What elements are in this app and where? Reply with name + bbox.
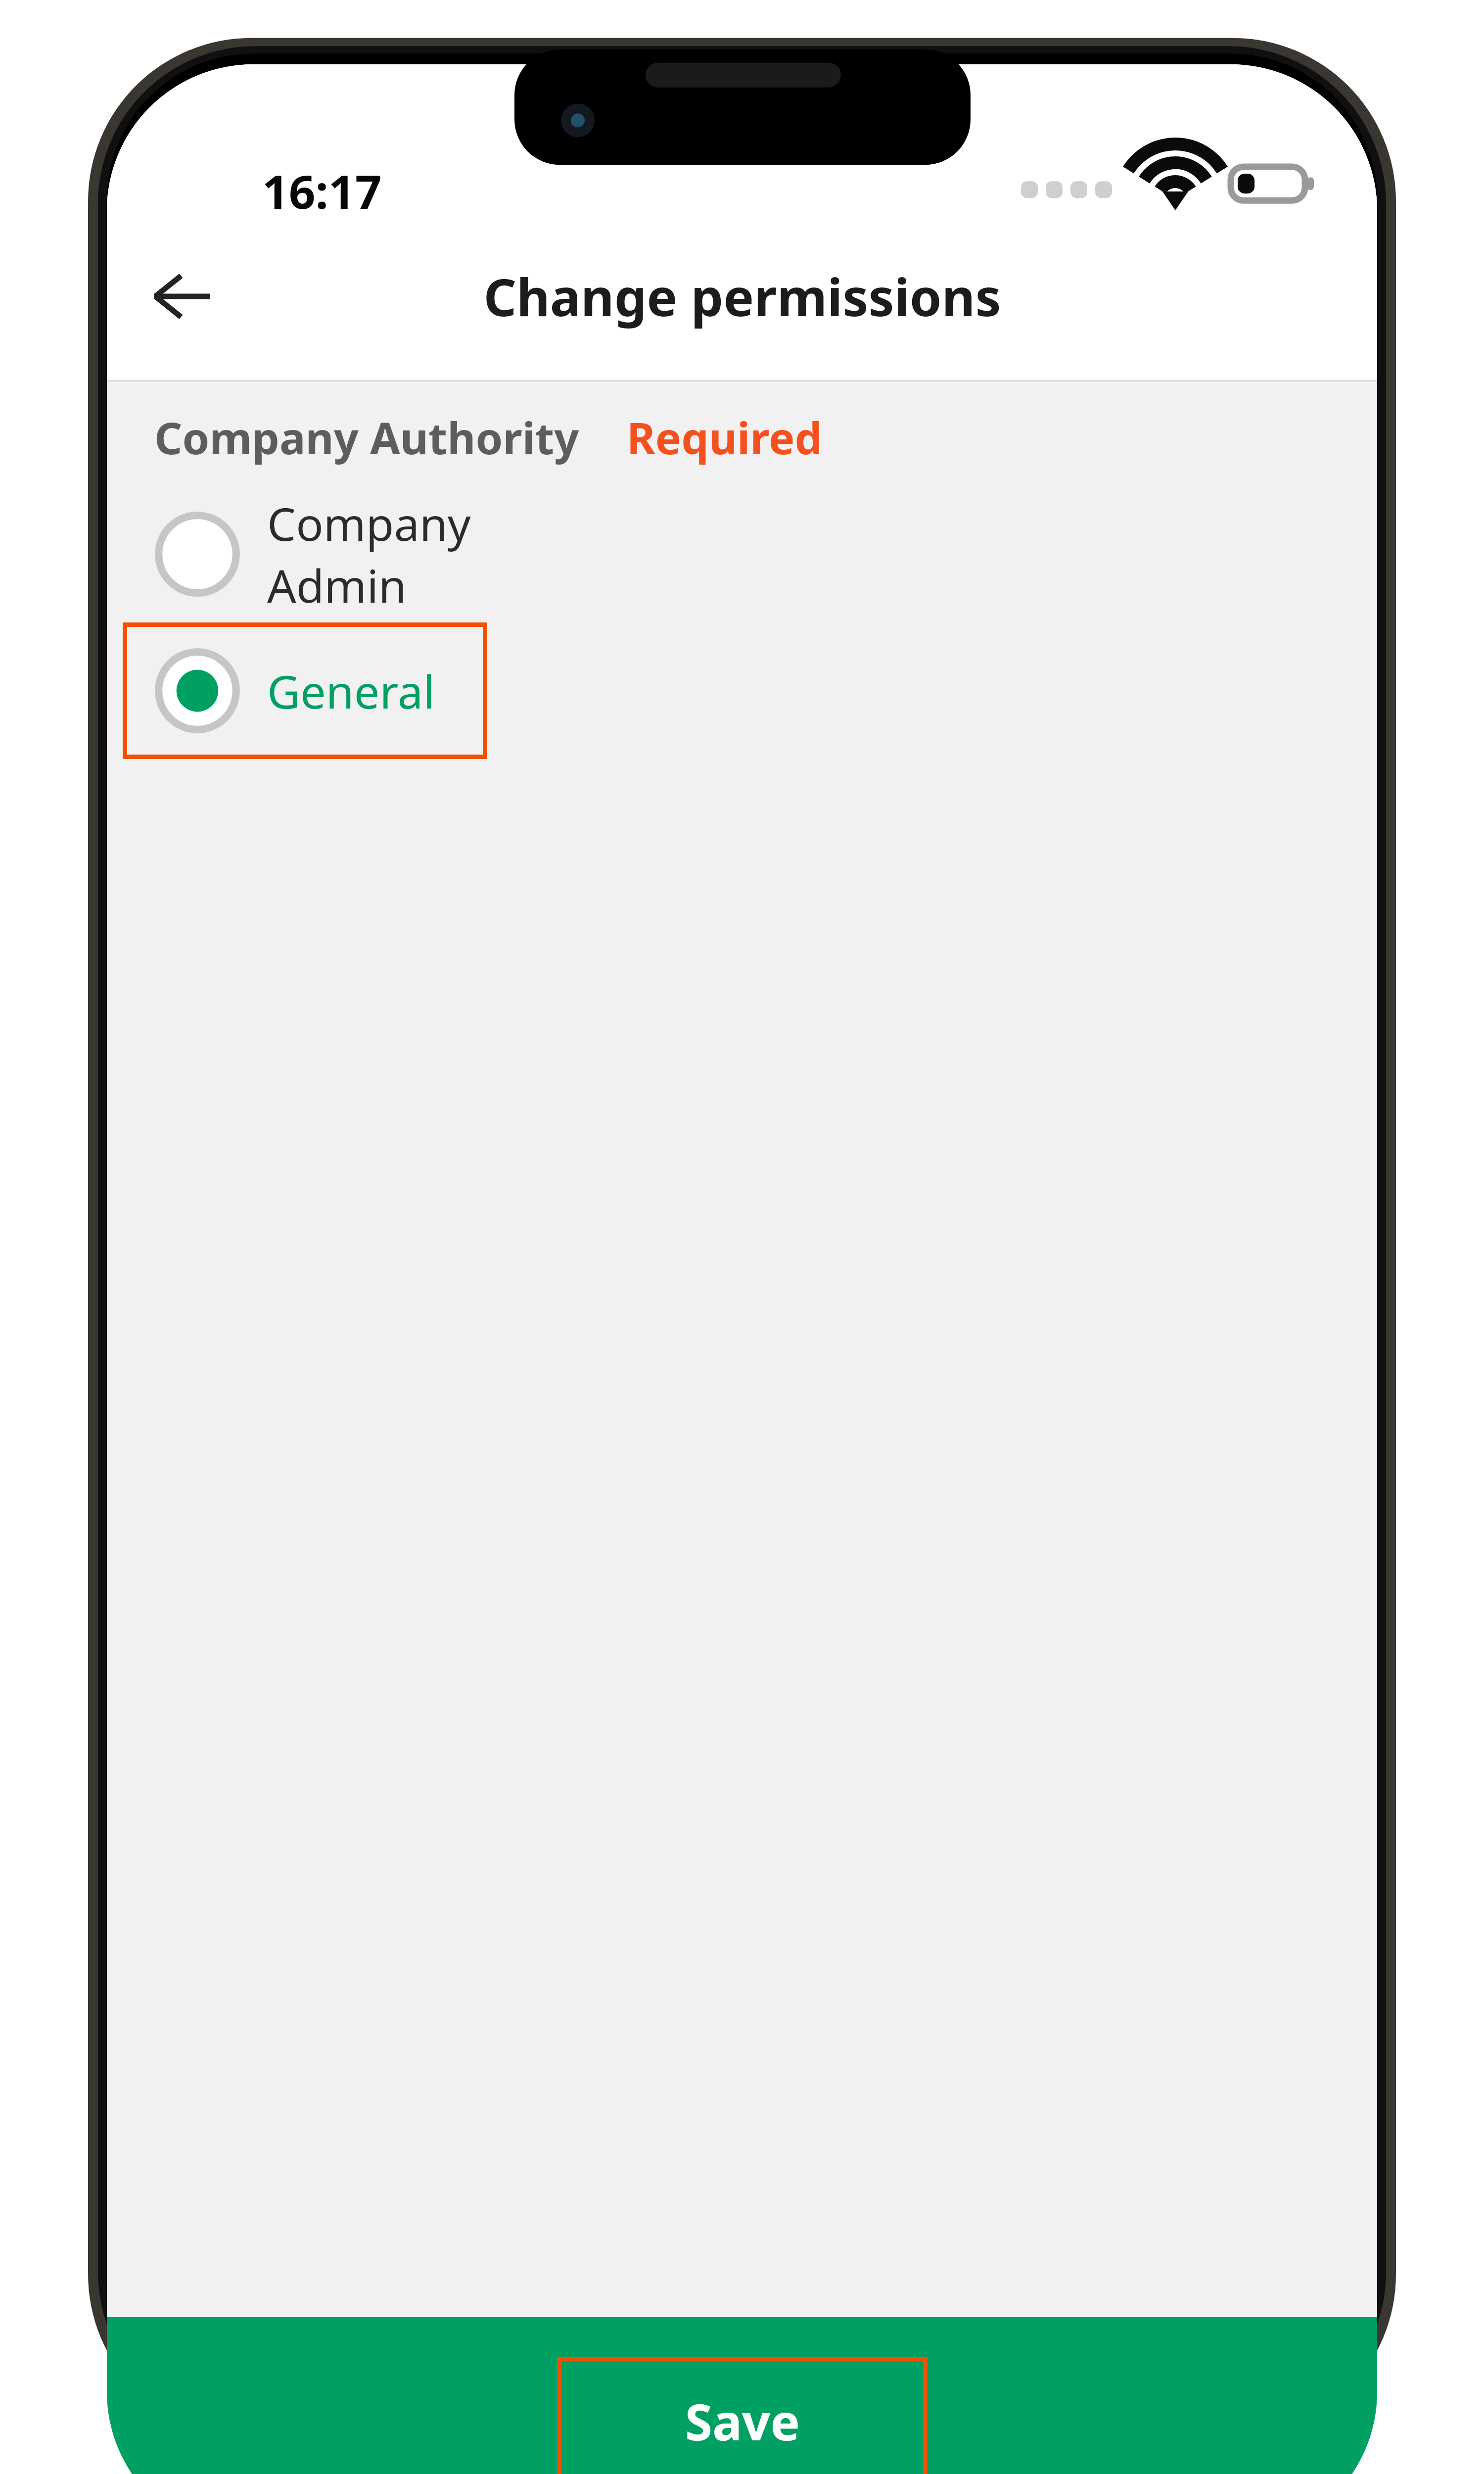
button[interactable]: Company Admin	[123, 486, 487, 622]
staticText: General	[267, 660, 435, 722]
staticText: Change permissions	[483, 261, 1001, 332]
staticText: Company Authority	[154, 408, 579, 467]
button[interactable]: Back	[127, 242, 235, 351]
staticText: Company Admin	[267, 492, 487, 616]
staticText: 16:17	[262, 159, 382, 223]
staticText: Save	[685, 2387, 800, 2455]
staticText: Required	[627, 408, 823, 467]
button[interactable]: Save	[557, 2357, 927, 2474]
button[interactable]: General	[123, 622, 487, 759]
